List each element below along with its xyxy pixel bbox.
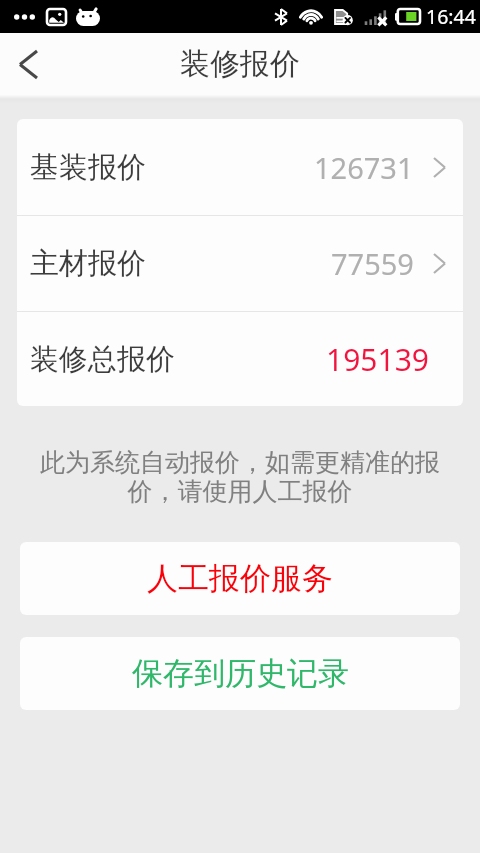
button[interactable]: 主材报价	[17, 216, 463, 311]
staticText: 126731	[314, 148, 414, 187]
staticText: 16:44	[426, 3, 476, 30]
staticText: 主材报价	[30, 245, 146, 282]
staticText: 77559	[331, 244, 414, 283]
staticText: 保存到历史记录	[132, 654, 349, 693]
staticText: 人工报价服务	[147, 559, 333, 598]
staticText: 装修报价	[180, 45, 300, 83]
staticText: 195139	[326, 339, 429, 380]
staticText: 装修总报价	[30, 341, 175, 378]
staticText: 此为系统自动报价，如需更精准的报价，请使用人工报价	[38, 447, 442, 507]
staticText: 基装报价	[30, 149, 146, 186]
button[interactable]: 装修总报价	[17, 312, 463, 406]
button[interactable]: 人工报价服务	[20, 542, 460, 615]
button[interactable]: Back	[0, 33, 56, 95]
button[interactable]: 基装报价	[17, 119, 463, 215]
button[interactable]: 保存到历史记录	[20, 637, 460, 710]
